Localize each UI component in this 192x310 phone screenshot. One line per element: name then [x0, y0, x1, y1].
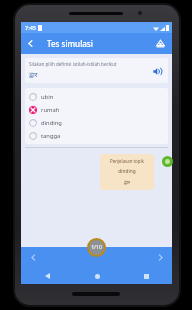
staticText: द्वार: [124, 179, 130, 186]
staticText: 7:45: [25, 24, 36, 31]
button[interactable]: Home: [91, 270, 103, 282]
staticText: Silakan pilih definisi istilah-istilah b…: [29, 61, 117, 67]
button[interactable]: Question 1 of 10: [87, 238, 106, 257]
button[interactable]: tangga: [25, 129, 168, 142]
button[interactable]: Next question: [152, 249, 168, 265]
button[interactable]: Back: [21, 34, 40, 53]
button[interactable]: Leaderboard: [151, 34, 170, 53]
staticText: rumah: [41, 106, 60, 114]
button[interactable]: ubin: [25, 90, 168, 103]
staticText: ubin: [41, 93, 54, 101]
button[interactable]: Back: [41, 270, 53, 282]
staticText: dinding: [41, 119, 62, 127]
button[interactable]: dinding: [25, 116, 168, 129]
staticText: द्वार: [29, 70, 38, 80]
staticText: tangga: [41, 132, 61, 140]
staticText: Penjelasan topik: [110, 158, 144, 164]
staticText: dinding: [118, 168, 136, 175]
button[interactable]: Recent apps: [140, 270, 152, 282]
button[interactable]: Play pronunciation: [150, 64, 164, 78]
staticText: Tes simulasi: [47, 38, 93, 49]
button[interactable]: Previous question: [25, 249, 41, 265]
button[interactable]: rumah: [25, 103, 168, 116]
button[interactable]: Topic help: [162, 156, 173, 167]
staticText: 1/10: [91, 244, 102, 251]
